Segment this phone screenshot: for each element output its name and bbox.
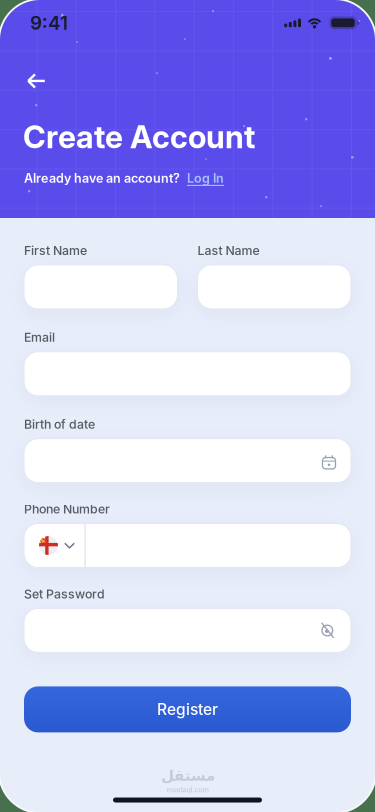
- staticText: Last Name: [197, 243, 259, 258]
- button[interactable]: [322, 454, 351, 468]
- button[interactable]: [319, 621, 351, 639]
- staticText: Already have an account?: [24, 171, 180, 186]
- staticText: Birth of date: [24, 417, 95, 432]
- button[interactable]: Log In: [187, 171, 224, 186]
- staticText: Register: [157, 700, 218, 719]
- staticText: Log In: [187, 171, 224, 186]
- staticText: Create Account: [23, 118, 255, 156]
- staticText: First Name: [24, 243, 87, 258]
- staticText: Phone Number: [24, 502, 110, 516]
- staticText: Set Password: [24, 586, 105, 601]
- button[interactable]: [24, 536, 75, 555]
- staticText: mostaql.com: [166, 785, 208, 794]
- button[interactable]: Register: [24, 686, 351, 732]
- staticText: مستقل: [160, 767, 214, 784]
- staticText: Email: [24, 330, 55, 345]
- staticText: 9:41: [30, 11, 68, 34]
- button[interactable]: [0, 34, 45, 88]
